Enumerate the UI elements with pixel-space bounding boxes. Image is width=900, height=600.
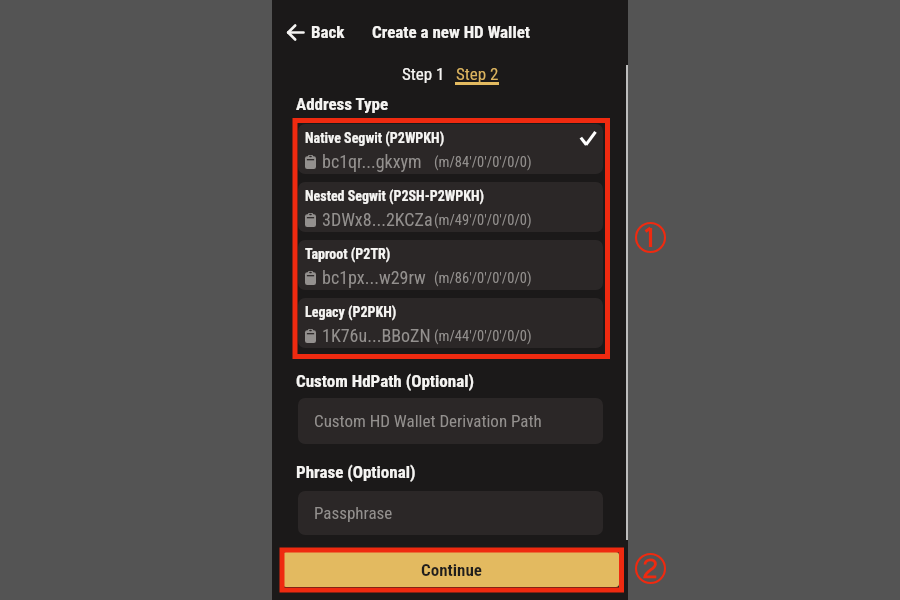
button[interactable]: Back <box>283 15 349 49</box>
button[interactable]: Custom HD Wallet Derivation Path <box>298 398 603 444</box>
staticText: Legacy (P2PKH) <box>305 304 397 320</box>
staticText: Custom HdPath (Optional) <box>296 371 474 391</box>
staticText: Address Type <box>296 94 389 114</box>
button[interactable]: Continue <box>283 552 619 587</box>
staticText: Nested Segwit (P2SH-P2WPKH) <box>305 188 485 204</box>
staticText: Passphrase <box>314 503 393 523</box>
staticText: Taproot (P2TR) <box>305 246 391 262</box>
other: Selected <box>580 131 596 146</box>
button[interactable]: Step 2 <box>455 64 499 87</box>
button[interactable]: Taproot (P2TR) <box>298 240 603 290</box>
staticText: Step 2 <box>456 64 499 84</box>
staticText: Continue <box>421 560 482 580</box>
button[interactable]: Passphrase <box>298 491 603 535</box>
other: Back <box>287 24 304 41</box>
button[interactable]: Step 1 <box>402 64 445 84</box>
staticText: Phrase (Optional) <box>296 462 416 482</box>
button[interactable]: Nested Segwit (P2SH-P2WPKH) <box>298 182 603 232</box>
staticText: bc1qr...gkxym <box>322 151 422 172</box>
staticText: 1K76u...BBoZN <box>322 325 431 346</box>
button[interactable]: Native Segwit (P2WPKH) <box>298 124 603 174</box>
staticText: (m/84'/0'/0'/0/0) <box>434 154 532 171</box>
staticText: Create a new HD Wallet <box>372 22 531 42</box>
staticText: Custom HD Wallet Derivation Path <box>314 411 542 431</box>
staticText: (m/49'/0'/0'/0/0) <box>434 212 532 229</box>
staticText: (m/44'/0'/0'/0/0) <box>434 328 532 345</box>
staticText: bc1px...w29rw <box>322 267 426 288</box>
staticText: Native Segwit (P2WPKH) <box>305 130 445 146</box>
button[interactable]: Legacy (P2PKH) <box>298 298 603 348</box>
staticText: 3DWx8...2KCZa <box>322 209 433 230</box>
staticText: Back <box>311 22 345 42</box>
staticText: (m/86'/0'/0'/0/0) <box>434 270 532 287</box>
